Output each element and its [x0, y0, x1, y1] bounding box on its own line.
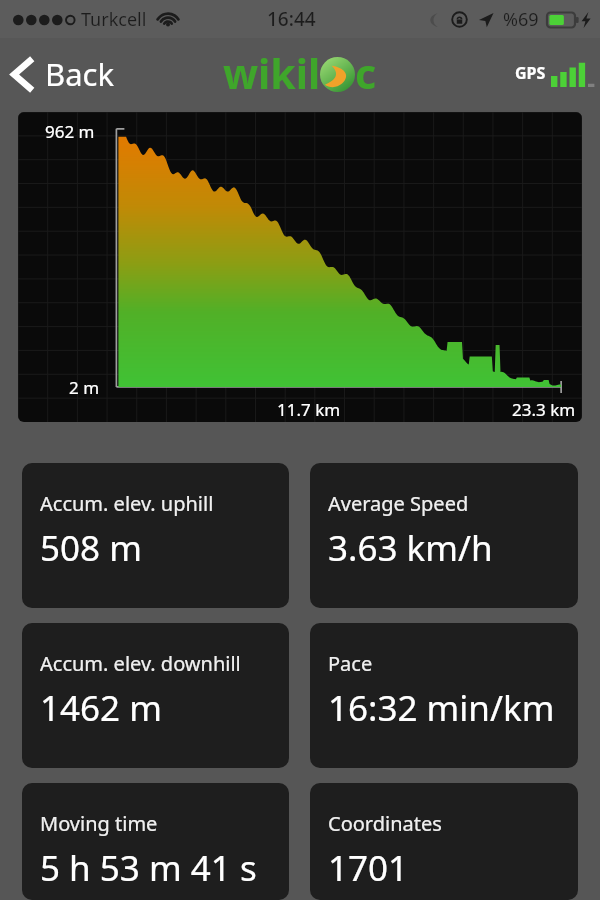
staticText: Accum. elev. uphill: [40, 490, 214, 517]
staticText: c: [355, 45, 377, 101]
button[interactable]: Pace: [310, 623, 578, 768]
staticText: 16:44: [267, 6, 316, 32]
staticText: Coordinates: [328, 810, 442, 837]
staticText: 962 m: [45, 120, 95, 143]
button[interactable]: Accum. elev. downhill: [22, 623, 289, 768]
staticText: 11.7 km: [277, 398, 341, 421]
button[interactable]: Accum. elev. uphill: [22, 463, 289, 608]
staticText: 1462 m: [40, 684, 162, 732]
staticText: 508 m: [40, 524, 142, 572]
staticText: Back: [45, 53, 114, 95]
staticText: 2 m: [69, 376, 100, 399]
staticText: Average Speed: [328, 490, 469, 517]
staticText: 5 h 53 m 41 s: [40, 844, 257, 892]
button[interactable]: Average Speed: [310, 463, 578, 608]
button[interactable]: Back: [0, 43, 130, 105]
button[interactable]: GPS signal strength: [505, 52, 600, 97]
button[interactable]: Coordinates: [310, 783, 578, 900]
button[interactable]: Moving time: [22, 783, 289, 900]
staticText: Moving time: [40, 810, 158, 837]
staticText: 3.63 km/h: [328, 524, 493, 572]
staticText: Accum. elev. downhill: [40, 650, 241, 677]
staticText: Turkcell: [81, 7, 147, 32]
staticText: 23.3 km: [512, 398, 576, 421]
button[interactable]: Wikiloc home: [223, 45, 378, 101]
staticText: GPS: [515, 62, 546, 84]
staticText: 16:32 min/km: [328, 684, 555, 732]
staticText: Pace: [328, 650, 373, 677]
staticText: 1701: [328, 844, 409, 892]
staticText: %69: [503, 7, 539, 32]
staticText: wikil: [223, 45, 321, 101]
